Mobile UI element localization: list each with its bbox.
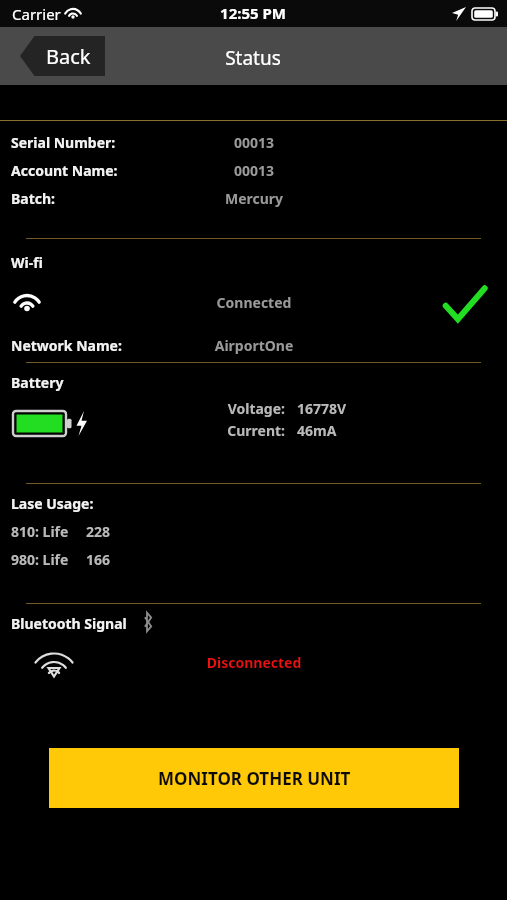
staticText: 980: Life — [11, 550, 69, 569]
staticText: 12:55 PM — [183, 3, 323, 26]
staticText: 00013 — [154, 161, 354, 183]
staticText: Carrier — [12, 4, 61, 24]
staticText: MONITOR OTHER UNIT — [158, 767, 351, 790]
staticText: Lase Usage: — [11, 494, 94, 513]
staticText: Batch: — [11, 189, 56, 208]
staticText: Account Name: — [11, 161, 118, 180]
staticText: 810: Life — [11, 522, 69, 541]
staticText: 228 — [86, 522, 111, 541]
staticText: Serial Number: — [11, 133, 116, 152]
staticText: Status — [153, 45, 353, 72]
staticText: Current: — [135, 421, 285, 443]
staticText: Voltage: — [135, 399, 285, 421]
staticText: Disconnected — [144, 653, 364, 675]
staticText: Battery — [11, 373, 64, 392]
staticText: Connected — [144, 293, 364, 315]
staticText: Wi-fi — [11, 253, 43, 272]
staticText: 00013 — [154, 133, 354, 155]
staticText: AirportOne — [144, 336, 364, 358]
staticText: Back — [46, 43, 91, 70]
staticText: 166 — [86, 550, 111, 569]
staticText: 16778V — [297, 399, 347, 418]
button[interactable]: MONITOR OTHER UNIT — [49, 748, 459, 808]
button[interactable]: Back — [20, 36, 105, 76]
staticText: Mercury — [154, 189, 354, 211]
staticText: 46mA — [297, 421, 337, 440]
staticText: Network Name: — [11, 336, 122, 355]
staticText: Bluetooth Signal — [11, 614, 127, 633]
